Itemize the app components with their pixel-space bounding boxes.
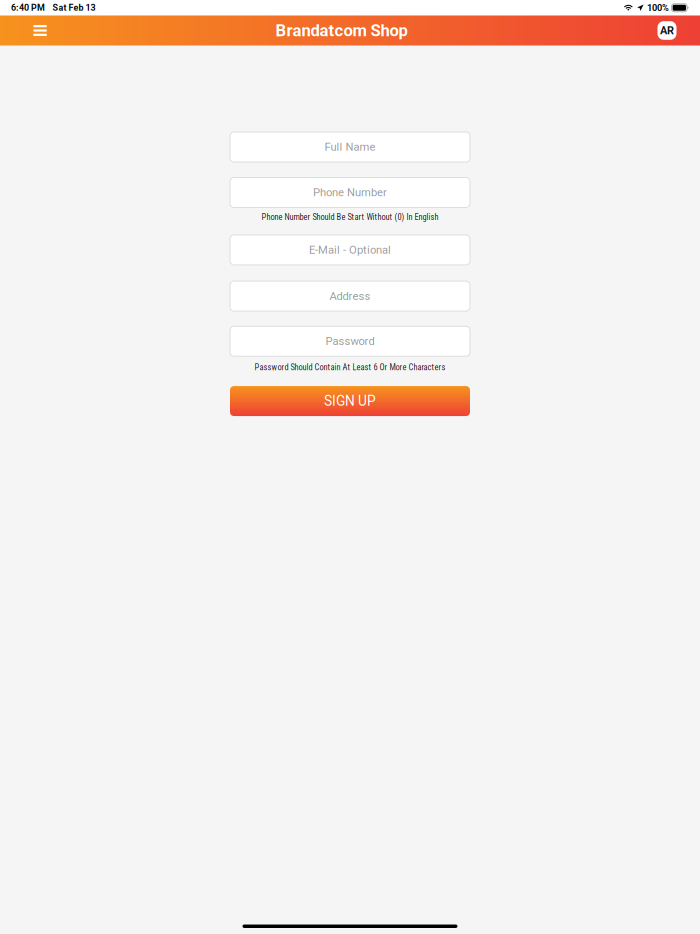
- button[interactable]: SIGN UP: [230, 386, 470, 416]
- staticText: SIGN UP: [324, 393, 376, 409]
- staticText: AR: [660, 24, 674, 37]
- button[interactable]: Password: [230, 326, 470, 356]
- staticText: Sat Feb 13: [52, 2, 95, 13]
- staticText: Phone Number: [313, 186, 387, 199]
- button[interactable]: Account: [653, 15, 680, 45]
- staticText: 100%: [647, 2, 669, 13]
- button[interactable]: Full Name: [230, 132, 470, 162]
- button[interactable]: Menu: [27, 15, 54, 45]
- staticText: E-Mail - Optional: [309, 243, 391, 256]
- staticText: Full Name: [324, 140, 375, 153]
- staticText: Password: [325, 335, 374, 348]
- staticText: Address: [329, 290, 370, 303]
- button[interactable]: E-Mail - Optional: [230, 235, 470, 265]
- staticText: 6:40 PM: [11, 2, 45, 13]
- staticText: Brandatcom Shop: [275, 21, 407, 40]
- staticText: Password Should Contain At Least 6 Or Mo…: [254, 362, 445, 372]
- staticText: Phone Number Should Be Start Without (0)…: [261, 212, 438, 222]
- button[interactable]: Phone Number: [230, 177, 470, 207]
- button[interactable]: Address: [230, 281, 470, 311]
